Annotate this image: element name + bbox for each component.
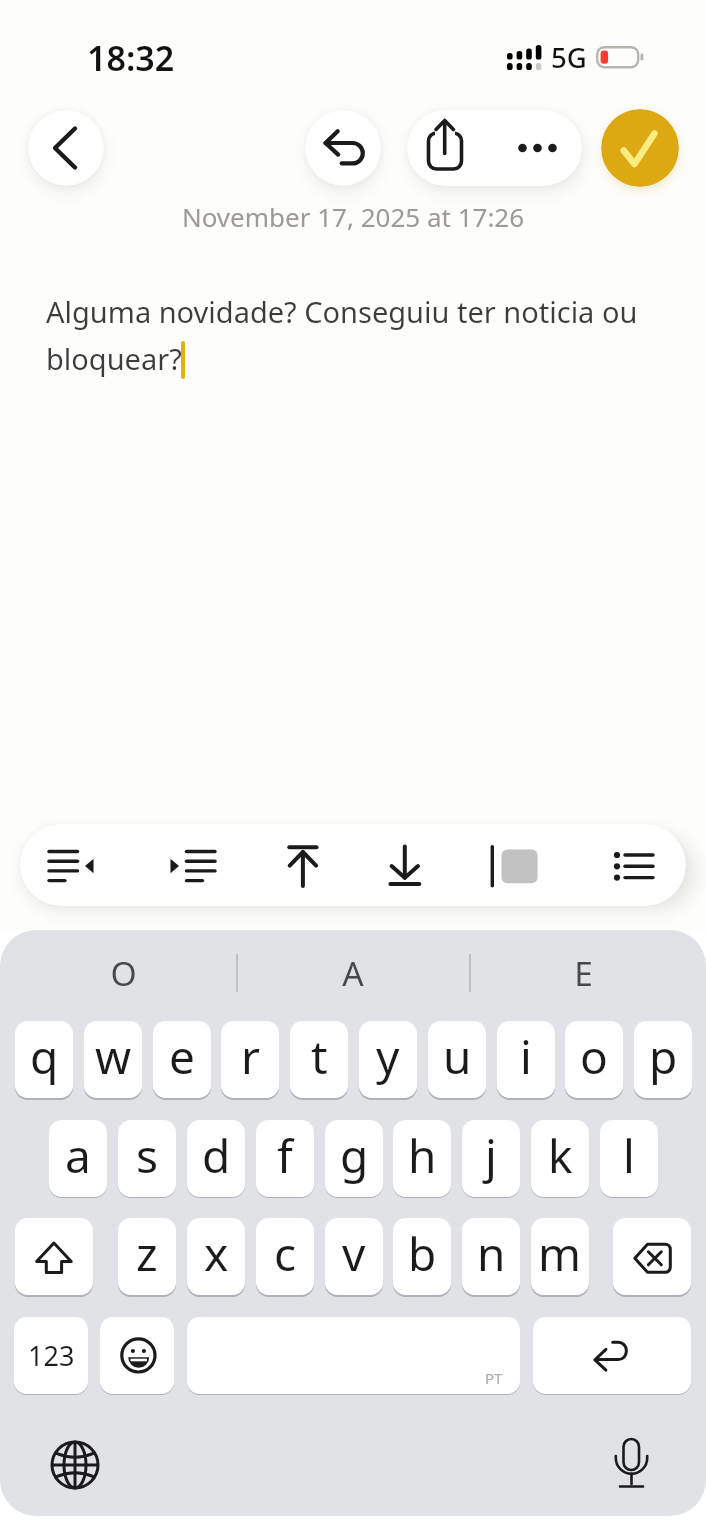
button[interactable] — [613, 1218, 691, 1295]
button[interactable]: O — [12, 950, 234, 996]
staticText: s — [136, 1124, 159, 1187]
staticText: O — [110, 950, 137, 996]
button[interactable] — [28, 110, 104, 186]
button[interactable] — [15, 1218, 93, 1295]
button[interactable] — [478, 830, 550, 902]
button[interactable]: E — [472, 950, 694, 996]
staticText: m — [538, 1222, 582, 1285]
staticText: g — [340, 1124, 369, 1187]
button[interactable]: z — [118, 1218, 176, 1295]
button[interactable]: t — [290, 1021, 348, 1098]
staticText: c — [274, 1222, 297, 1285]
button[interactable]: w — [84, 1021, 142, 1098]
staticText: h — [408, 1124, 437, 1187]
staticText: f — [277, 1124, 293, 1187]
staticText: w — [95, 1025, 132, 1088]
staticText: 123 — [28, 1337, 75, 1374]
staticText: r — [241, 1025, 260, 1088]
staticText: d — [202, 1124, 231, 1187]
button[interactable]: i — [497, 1021, 555, 1098]
button[interactable]: m — [531, 1218, 589, 1295]
button[interactable] — [601, 1432, 661, 1494]
button[interactable] — [598, 830, 670, 902]
button[interactable]: v — [325, 1218, 383, 1295]
staticText: n — [477, 1222, 506, 1285]
button[interactable] — [601, 109, 679, 187]
staticText: 5G — [551, 39, 587, 76]
button[interactable]: d — [187, 1120, 245, 1197]
staticText: t — [311, 1025, 328, 1088]
button[interactable]: k — [531, 1120, 589, 1197]
staticText: q — [30, 1025, 59, 1088]
button[interactable]: j — [462, 1120, 520, 1197]
button[interactable]: b — [393, 1218, 451, 1295]
button[interactable]: n — [462, 1218, 520, 1295]
staticText: v — [342, 1222, 366, 1285]
staticText: j — [485, 1124, 497, 1187]
button[interactable]: q — [15, 1021, 73, 1098]
staticText: E — [574, 950, 593, 996]
button[interactable]: p — [634, 1021, 692, 1098]
staticText: A — [342, 950, 364, 996]
button[interactable]: f — [256, 1120, 314, 1197]
button[interactable]: g — [325, 1120, 383, 1197]
button[interactable]: c — [256, 1218, 314, 1295]
button[interactable] — [407, 110, 582, 186]
staticText: 18:32 — [87, 35, 175, 81]
staticText: i — [520, 1025, 532, 1088]
button[interactable] — [157, 830, 229, 902]
button[interactable] — [367, 830, 439, 902]
staticText: k — [548, 1124, 573, 1187]
staticText: y — [376, 1025, 400, 1088]
button[interactable]: a — [49, 1120, 107, 1197]
button[interactable]: s — [118, 1120, 176, 1197]
button[interactable]: u — [428, 1021, 486, 1098]
button[interactable]: r — [221, 1021, 279, 1098]
staticText: November 17, 2025 at 17:26 — [0, 199, 706, 234]
staticText: a — [65, 1124, 91, 1187]
button[interactable]: h — [393, 1120, 451, 1197]
button[interactable]: l — [600, 1120, 658, 1197]
button[interactable]: e — [153, 1021, 211, 1098]
staticText: b — [408, 1222, 437, 1285]
staticText: x — [204, 1222, 229, 1285]
staticText: u — [443, 1025, 472, 1088]
button[interactable]: 123 — [14, 1317, 88, 1394]
staticText: o — [580, 1025, 608, 1088]
button[interactable]: x — [187, 1218, 245, 1295]
button[interactable] — [100, 1317, 174, 1394]
staticText: z — [136, 1222, 158, 1285]
button[interactable]: y — [359, 1021, 417, 1098]
button[interactable] — [305, 110, 381, 186]
staticText: l — [623, 1124, 635, 1187]
button[interactable] — [267, 830, 339, 902]
staticText: PT — [485, 1368, 503, 1388]
button[interactable]: PT — [187, 1317, 520, 1394]
button[interactable]: A — [242, 950, 464, 996]
staticText: Alguma novidade? Conseguiu ter noticia o… — [46, 292, 638, 378]
button[interactable]: o — [565, 1021, 623, 1098]
button[interactable] — [45, 1435, 105, 1495]
button[interactable] — [35, 830, 107, 902]
staticText: p — [649, 1025, 678, 1088]
staticText: e — [169, 1025, 195, 1088]
button[interactable] — [533, 1317, 691, 1394]
